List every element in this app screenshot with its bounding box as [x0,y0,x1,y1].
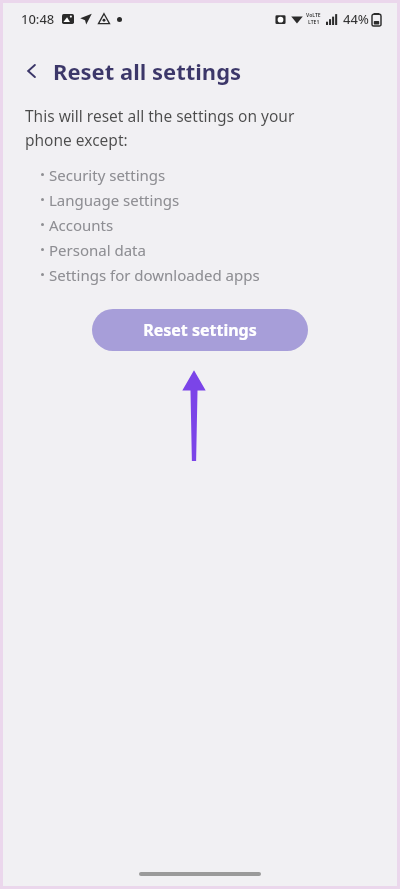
staticText: Security settings [49,165,166,185]
staticText: Accounts [49,215,114,235]
staticText: Language settings [49,190,180,210]
staticText: Settings for downloaded apps [49,265,260,285]
staticText: 10:48 [21,10,55,28]
staticText: Reset all settings [53,56,242,86]
staticText: This will reset all the settings on your… [25,105,345,150]
button[interactable]: Reset settings [92,309,308,351]
staticText: LTE1 [308,19,320,26]
staticText: 44% [343,10,369,28]
staticText: VoLTE [306,12,321,19]
button[interactable]: Back [15,54,49,88]
staticText: Personal data [49,240,146,260]
staticText: Reset settings [143,319,257,341]
